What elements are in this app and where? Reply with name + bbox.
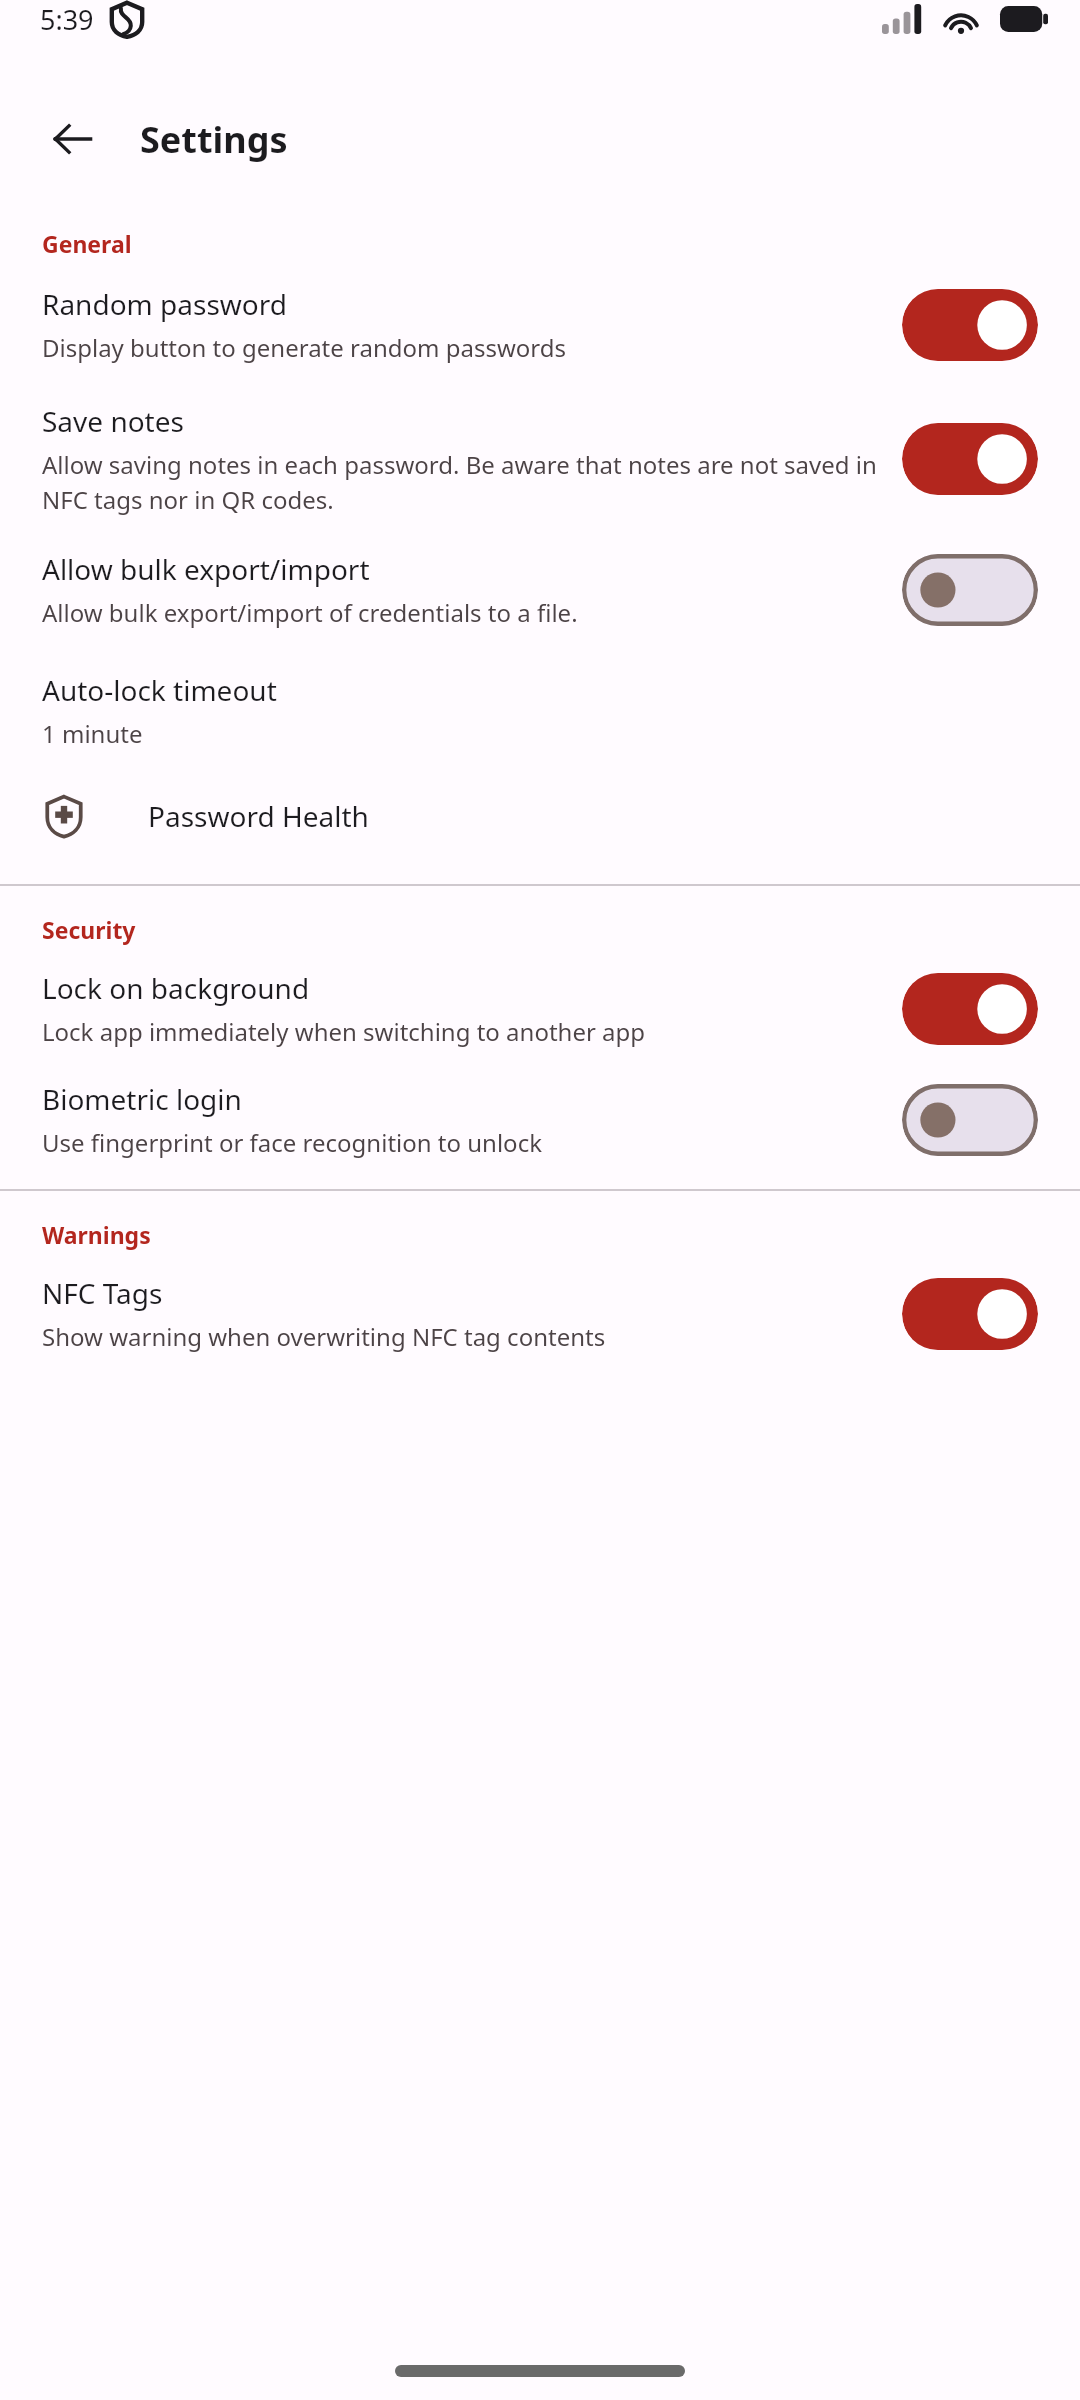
staticText: 1 minute xyxy=(42,717,143,750)
button[interactable]: Password Health xyxy=(0,772,1080,860)
staticText: Settings xyxy=(140,115,288,164)
staticText: Display button to generate random passwo… xyxy=(42,331,567,364)
staticText: NFC Tags xyxy=(42,1274,163,1312)
staticText: Use fingerprint or face recognition to u… xyxy=(42,1126,542,1159)
button[interactable]: Off xyxy=(902,1082,1038,1158)
button[interactable]: On xyxy=(902,1276,1038,1352)
staticText: Password Health xyxy=(148,797,369,835)
button[interactable]: Biometric login xyxy=(0,1064,1080,1177)
button[interactable]: Save notes xyxy=(0,384,1080,534)
staticText: Allow bulk export/import of credentials … xyxy=(42,596,578,629)
button[interactable]: Random password xyxy=(0,263,1080,384)
button[interactable]: On xyxy=(902,287,1038,363)
staticText: Lock on background xyxy=(42,969,310,1007)
button[interactable]: Lock on background xyxy=(0,949,1080,1064)
button[interactable]: NFC Tags xyxy=(0,1254,1080,1371)
staticText: Allow bulk export/import xyxy=(42,550,370,588)
button[interactable]: On xyxy=(902,971,1038,1047)
staticText: General xyxy=(42,228,132,259)
staticText: Biometric login xyxy=(42,1080,242,1118)
staticText: Security xyxy=(42,914,136,945)
staticText: Lock app immediately when switching to a… xyxy=(42,1015,646,1048)
button[interactable]: Auto-lock timeout xyxy=(0,647,1080,772)
staticText: Allow saving notes in each password. Be … xyxy=(42,448,878,516)
staticText: Save notes xyxy=(42,402,184,440)
button[interactable]: On xyxy=(902,421,1038,497)
staticText: Warnings xyxy=(42,1219,151,1250)
staticText: Random password xyxy=(42,285,287,323)
staticText: Show warning when overwriting NFC tag co… xyxy=(42,1320,606,1353)
button[interactable]: Back xyxy=(34,100,112,178)
button[interactable]: Allow bulk export/import xyxy=(0,534,1080,647)
button[interactable]: Off xyxy=(902,552,1038,628)
staticText: 5:39 xyxy=(40,1,94,38)
staticText: Auto-lock timeout xyxy=(42,671,277,709)
